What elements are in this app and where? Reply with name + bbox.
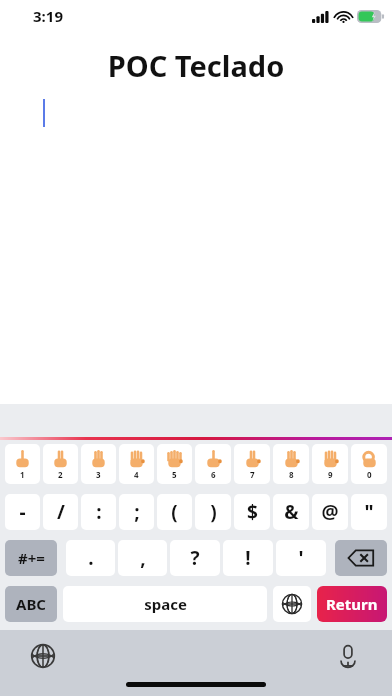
staticText: ABC [16,594,46,614]
staticText: ; [134,499,140,525]
button[interactable]: ( [157,494,192,530]
staticText: / [57,499,65,525]
staticText: 1 [20,469,25,480]
staticText: ) [210,499,217,525]
button[interactable]: : [81,494,116,530]
button[interactable]: ABC [5,586,57,622]
staticText: POC Teclado [0,46,392,85]
button[interactable]: Return [317,586,387,622]
button[interactable]: Number 3 [81,444,116,484]
button[interactable]: ? [170,540,220,576]
staticText: . [88,545,94,571]
button[interactable]: Switch language [273,586,311,622]
staticText: 7 [250,469,255,480]
staticText: @ [321,499,339,525]
staticText: 4 [134,469,139,480]
button[interactable]: Number 1 [5,444,40,484]
staticText: ' [298,545,304,571]
staticText: Return [326,594,378,614]
button[interactable]: ' [276,540,326,576]
staticText: 2 [58,469,63,480]
staticText: 3 [96,469,101,480]
button[interactable]: , [118,540,167,576]
staticText: #+= [18,548,45,568]
staticText: ( [171,499,178,525]
staticText: 0 [367,469,372,480]
staticText: 5 [172,469,177,480]
button[interactable]: space [63,586,267,622]
button[interactable]: Change keyboard [26,639,60,673]
button[interactable]: & [273,494,309,530]
button[interactable]: Number 5 [157,444,192,484]
button[interactable]: " [351,494,387,530]
button[interactable]: Backspace [335,540,387,576]
button[interactable]: #+= [5,540,57,576]
button[interactable]: Number 0 [351,444,387,484]
staticText: 9 [328,469,333,480]
button[interactable]: Number 4 [119,444,154,484]
staticText: space [144,594,187,614]
staticText: : [96,499,102,525]
button[interactable]: Number 9 [312,444,348,484]
staticText: 6 [211,469,216,480]
button[interactable]: @ [312,494,348,530]
staticText: 3:19 [33,6,63,26]
button[interactable]: ; [119,494,154,530]
button[interactable]: . [66,540,115,576]
button[interactable]: ) [195,494,231,530]
staticText: " [364,499,374,525]
staticText: , [140,545,146,571]
button[interactable]: / [43,494,78,530]
staticText: $ [247,499,258,525]
staticText: 8 [289,469,294,480]
button[interactable]: - [5,494,40,530]
staticText: ? [190,545,200,571]
button[interactable]: Number 7 [234,444,270,484]
button[interactable]: Number 6 [195,444,231,484]
staticText: - [19,499,26,525]
staticText: & [284,499,299,525]
button[interactable]: Number 8 [273,444,309,484]
button[interactable]: ! [223,540,273,576]
button[interactable]: Number 2 [43,444,78,484]
button[interactable]: Dictation [331,639,365,673]
staticText: ! [245,545,251,571]
button[interactable]: $ [234,494,270,530]
